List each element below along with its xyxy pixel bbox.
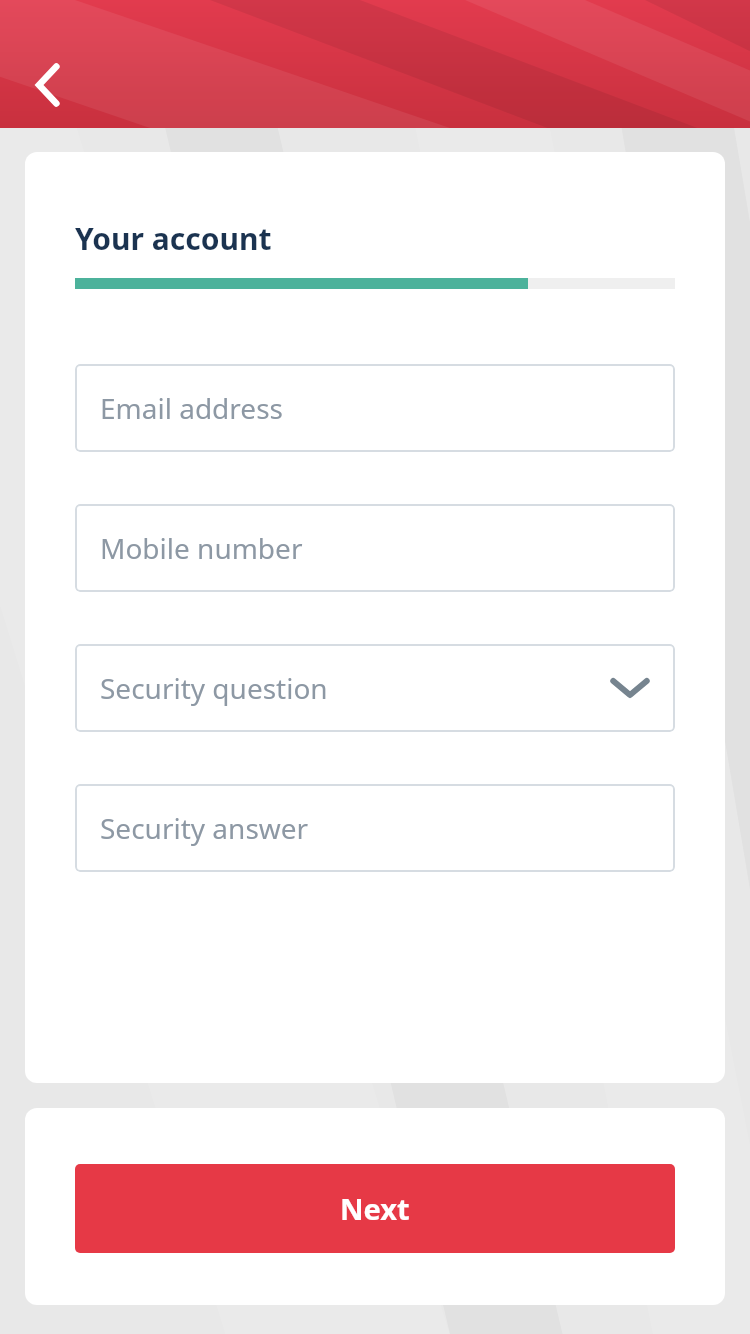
button[interactable]: Next <box>75 1164 675 1253</box>
staticText: Mobile number <box>100 529 303 567</box>
staticText: Email address <box>100 389 283 427</box>
button[interactable]: Mobile number <box>75 504 675 592</box>
staticText: Next <box>340 1189 410 1228</box>
staticText: Security answer <box>100 809 309 847</box>
button[interactable]: Email address <box>75 364 675 452</box>
button[interactable]: Security question <box>75 644 675 732</box>
button[interactable]: Back <box>12 49 84 121</box>
staticText: Your account <box>75 218 272 259</box>
button[interactable]: Security answer <box>75 784 675 872</box>
staticText: Security question <box>100 669 328 707</box>
